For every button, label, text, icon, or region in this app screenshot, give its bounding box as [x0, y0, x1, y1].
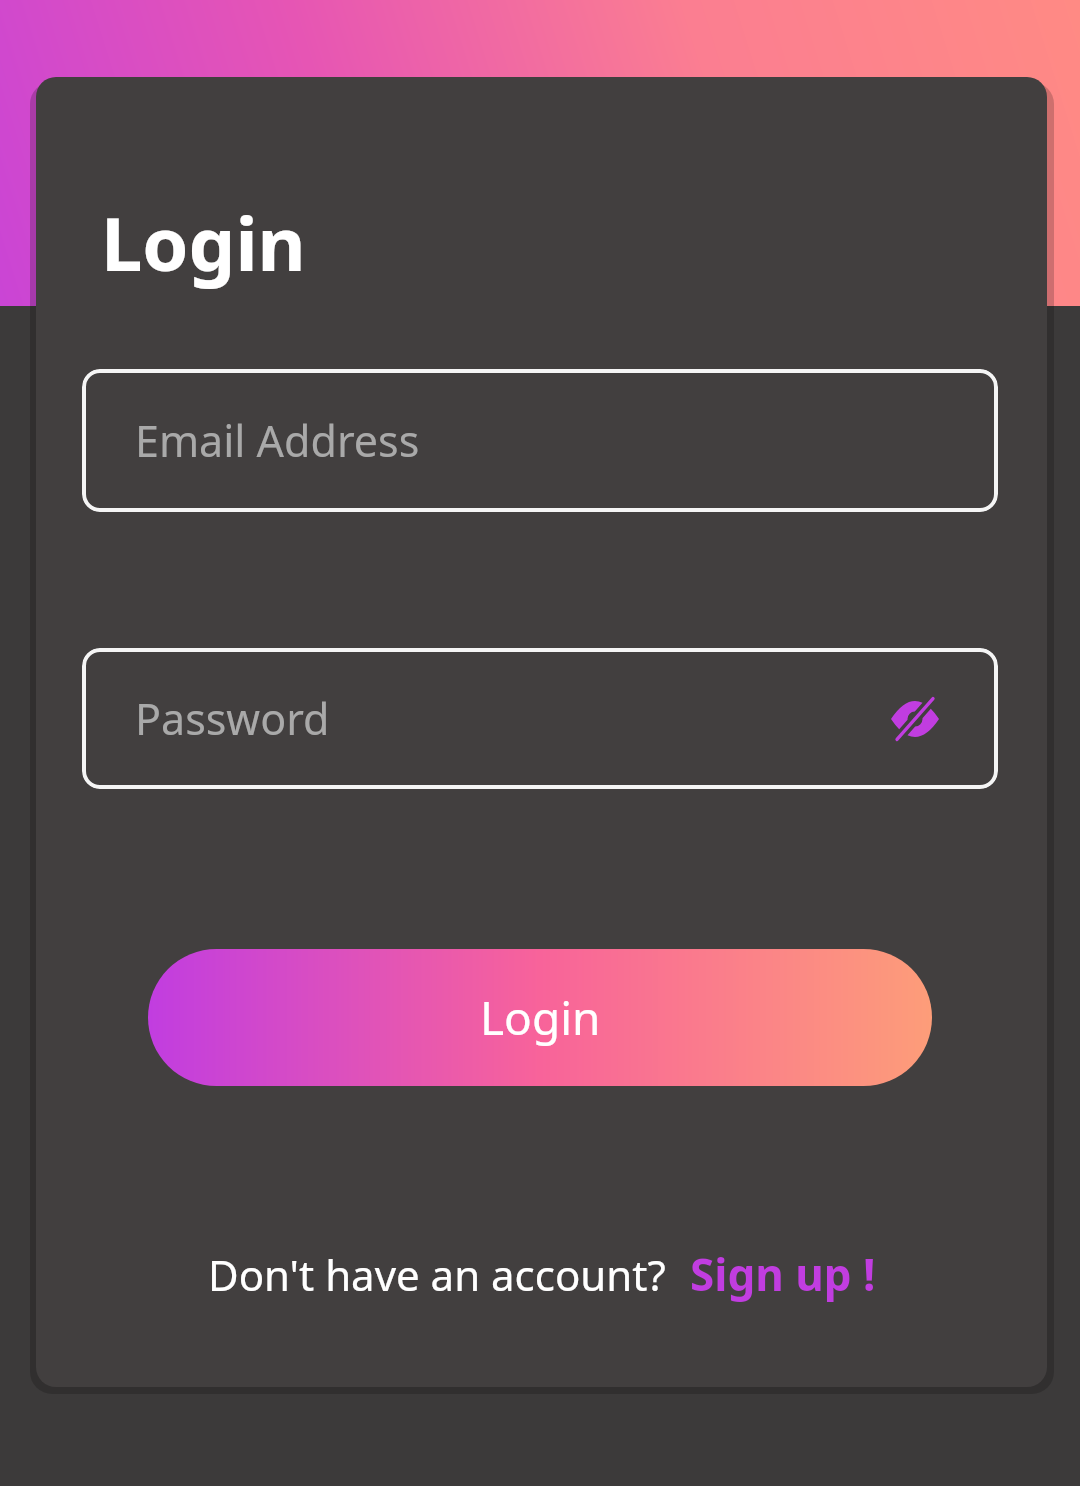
button[interactable]: Password: [82, 648, 998, 789]
staticText: Password: [135, 689, 330, 748]
button[interactable]: Show password: [882, 686, 948, 752]
staticText: Sign up !: [690, 1244, 876, 1304]
button[interactable]: Login: [148, 949, 932, 1086]
staticText: Login: [101, 192, 306, 293]
staticText: Login: [480, 986, 601, 1049]
staticText: Email Address: [135, 411, 420, 470]
staticText: Don't have an account?: [208, 1246, 666, 1303]
button[interactable]: Email Address: [82, 369, 998, 512]
button[interactable]: Sign up !: [690, 1244, 876, 1304]
